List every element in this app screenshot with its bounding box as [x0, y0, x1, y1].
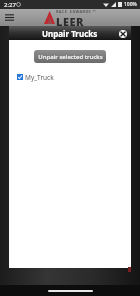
staticText: 2:27	[4, 1, 16, 9]
staticText: RACE EDWARDS ™	[56, 9, 96, 14]
button[interactable]: Unpair selected trucks	[34, 50, 106, 63]
button[interactable]: Open navigation menu	[3, 11, 16, 24]
staticText: Unpair selected trucks	[38, 53, 103, 61]
staticText: LEER	[56, 14, 84, 26]
staticText: My_Truck	[25, 73, 54, 82]
staticText: Unpair Trucks	[42, 28, 98, 39]
button[interactable]: My_Truck	[17, 71, 131, 83]
staticText: 100%	[124, 1, 137, 8]
button[interactable]: Close	[117, 28, 128, 39]
